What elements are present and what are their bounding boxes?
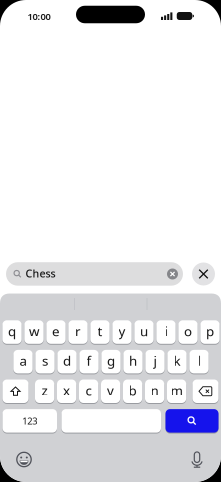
button[interactable]: Shift [2, 379, 28, 403]
staticText: t [97, 322, 102, 340]
staticText: v [107, 381, 114, 399]
staticText: g [107, 352, 115, 369]
staticText: f [86, 352, 91, 369]
staticText: l [197, 352, 200, 369]
staticText: d [63, 352, 71, 369]
staticText: j [153, 352, 156, 369]
button[interactable]: u [134, 320, 154, 344]
button[interactable]: n [145, 379, 164, 403]
button[interactable]: b [123, 379, 142, 403]
button[interactable]: z [35, 379, 54, 403]
staticText: 123 [22, 415, 37, 427]
staticText: n [151, 381, 159, 399]
button[interactable]: v [101, 379, 120, 403]
staticText: c [86, 381, 92, 399]
staticText: y [118, 322, 125, 340]
staticText: k [173, 352, 180, 369]
button[interactable]: s [35, 349, 55, 374]
staticText: a [19, 352, 26, 369]
button[interactable]: o [178, 320, 198, 344]
button[interactable]: Delete [192, 379, 218, 403]
button[interactable]: Chess [6, 262, 183, 286]
staticText: x [63, 381, 70, 399]
button[interactable]: c [79, 379, 98, 403]
button[interactable]: a [13, 349, 33, 374]
button[interactable]: Search [165, 409, 218, 433]
button[interactable]: Emoji [16, 451, 32, 467]
button[interactable]: Space [61, 409, 161, 433]
staticText: e [52, 322, 60, 340]
button[interactable]: i [156, 320, 176, 344]
staticText: m [171, 381, 183, 399]
staticText: z [42, 381, 48, 399]
staticText: Chess [25, 266, 55, 281]
button[interactable]: m [167, 379, 186, 403]
staticText: o [184, 322, 192, 340]
staticText: i [164, 322, 167, 340]
staticText: q [8, 322, 16, 340]
button[interactable]: t [90, 320, 110, 344]
button[interactable]: y [112, 320, 132, 344]
button[interactable]: g [101, 349, 121, 374]
staticText: u [140, 322, 148, 340]
button[interactable]: Close [192, 262, 215, 285]
button[interactable]: k [167, 349, 187, 374]
button[interactable]: r [68, 320, 88, 344]
button[interactable]: e [46, 320, 66, 344]
staticText: h [129, 352, 137, 369]
button[interactable]: j [145, 349, 165, 374]
button[interactable]: p [200, 320, 220, 344]
staticText: b [129, 381, 137, 399]
button[interactable]: 123 [2, 409, 57, 433]
button[interactable]: d [57, 349, 77, 374]
staticText: 10:00 [27, 10, 50, 23]
button[interactable]: f [79, 349, 99, 374]
button[interactable]: w [24, 320, 44, 344]
button[interactable]: x [57, 379, 76, 403]
staticText: p [206, 322, 214, 340]
staticText: w [29, 322, 39, 340]
button[interactable]: Dictate [190, 451, 204, 467]
staticText: s [42, 352, 48, 369]
button[interactable]: q [2, 320, 22, 344]
button[interactable]: h [123, 349, 143, 374]
button[interactable]: Clear text [166, 267, 179, 280]
staticText: r [75, 322, 81, 340]
button[interactable]: l [189, 349, 209, 374]
